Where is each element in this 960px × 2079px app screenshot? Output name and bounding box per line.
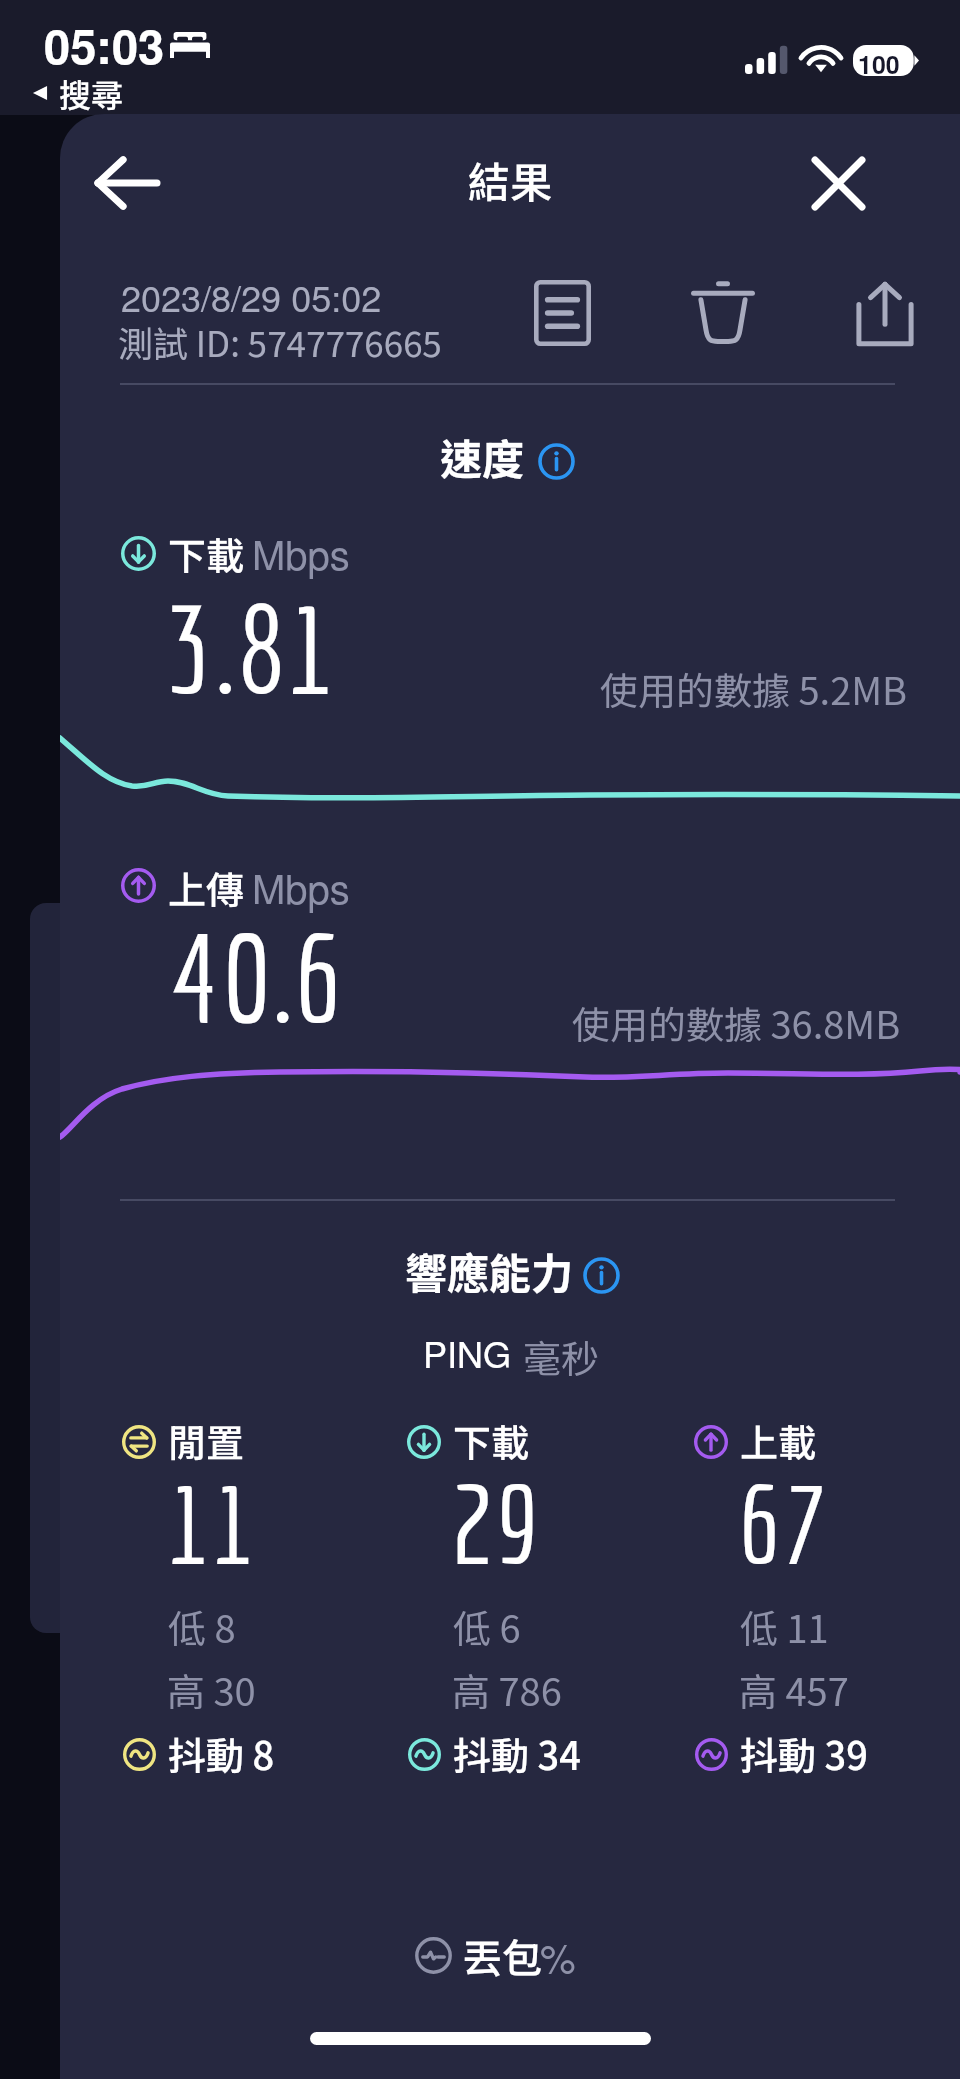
staticText: 閒置 — [168, 1413, 245, 1468]
other: 上傳 — [116, 863, 160, 907]
button[interactable]: Speed info — [534, 439, 578, 483]
staticText: 上載 — [740, 1413, 817, 1468]
staticText: 100 — [858, 46, 900, 82]
staticText: 高 30 — [167, 1662, 256, 1717]
button[interactable]: 速度 — [440, 426, 525, 487]
button[interactable]: 響應能力 — [405, 1240, 574, 1301]
button[interactable]: 搜尋 — [29, 70, 124, 116]
staticText: Mbps — [252, 524, 350, 581]
other: 下載 — [116, 531, 160, 575]
staticText: 上傳 — [168, 860, 245, 915]
staticText: 低 8 — [168, 1599, 236, 1654]
staticText: 高 457 — [739, 1662, 849, 1717]
staticText: 使用的數據 36.8MB — [572, 995, 901, 1050]
staticText: 下載 — [168, 526, 245, 581]
staticText: 67 — [738, 1461, 828, 1586]
staticText: 使用的數據 5.2MB — [600, 661, 908, 716]
button[interactable]: Share — [840, 268, 930, 358]
staticText: 抖動 34 — [453, 1726, 581, 1781]
staticText: 高 786 — [452, 1662, 562, 1717]
staticText: 11 — [166, 1461, 256, 1586]
button[interactable]: Packet loss — [389, 1911, 477, 1999]
staticText: 結果 — [468, 149, 553, 210]
other: 閒置 — [117, 1420, 161, 1464]
other: 下載 — [402, 1420, 446, 1464]
staticText: 毫秒 — [523, 1329, 600, 1384]
staticText: % — [540, 1927, 576, 1984]
other: 上載 — [689, 1420, 733, 1464]
staticText: 下載 — [453, 1413, 530, 1468]
staticText: 3.81 — [165, 579, 336, 718]
other: 抖動 8 — [117, 1732, 161, 1776]
staticText: 05:03 — [44, 11, 165, 78]
button[interactable]: Details — [517, 268, 607, 358]
staticText: Mbps — [252, 858, 350, 915]
staticText: 丟包 — [462, 1927, 542, 1985]
button[interactable]: Close — [798, 143, 878, 223]
button[interactable]: Responsiveness info — [579, 1253, 623, 1297]
staticText: 抖動 8 — [168, 1726, 275, 1781]
staticText: 2023/8/29 05:02 — [121, 271, 382, 323]
staticText: 抖動 39 — [740, 1726, 868, 1781]
staticText: 低 11 — [740, 1599, 829, 1654]
other: 抖動 34 — [402, 1732, 446, 1776]
staticText: 29 — [451, 1461, 541, 1586]
staticText: 搜尋 — [59, 70, 124, 116]
other: 抖動 39 — [689, 1732, 733, 1776]
staticText: 低 6 — [453, 1599, 521, 1654]
button[interactable]: Delete — [678, 268, 768, 358]
staticText: PING — [423, 1327, 512, 1379]
button[interactable]: Back — [87, 143, 167, 223]
staticText: 40.6 — [171, 906, 345, 1047]
staticText: 測試 ID: 5747776665 — [118, 316, 442, 367]
